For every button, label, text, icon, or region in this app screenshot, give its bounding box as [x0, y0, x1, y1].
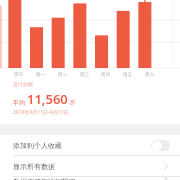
staticText: 数据来源与访问权限	[13, 177, 76, 180]
staticText: 平均	[13, 99, 25, 107]
staticText: 周日	[14, 72, 23, 78]
staticText: 周五	[123, 72, 132, 78]
staticText: 总计步数	[13, 81, 33, 87]
staticText: 周六	[145, 72, 154, 78]
staticText: 周三	[80, 72, 89, 78]
button[interactable]: 添加到个人收藏开关	[151, 140, 170, 151]
staticText: 添加到个人收藏	[13, 141, 62, 150]
button[interactable]: 显示所有数据	[0, 156, 180, 176]
staticText: 2019年4月11日-4月17日	[13, 109, 69, 116]
other: 打开	[164, 163, 168, 170]
staticText: 11,560	[27, 90, 68, 108]
staticText: 周一	[36, 72, 45, 78]
button[interactable]: 添加到个人收藏	[0, 135, 180, 155]
staticText: 周二	[58, 72, 67, 78]
button[interactable]: 数据来源与访问权限	[0, 177, 180, 180]
staticText: 显示所有数据	[13, 162, 55, 171]
staticText: 步	[70, 99, 76, 106]
staticText: 周四	[101, 72, 110, 78]
other: 打开	[164, 177, 168, 180]
